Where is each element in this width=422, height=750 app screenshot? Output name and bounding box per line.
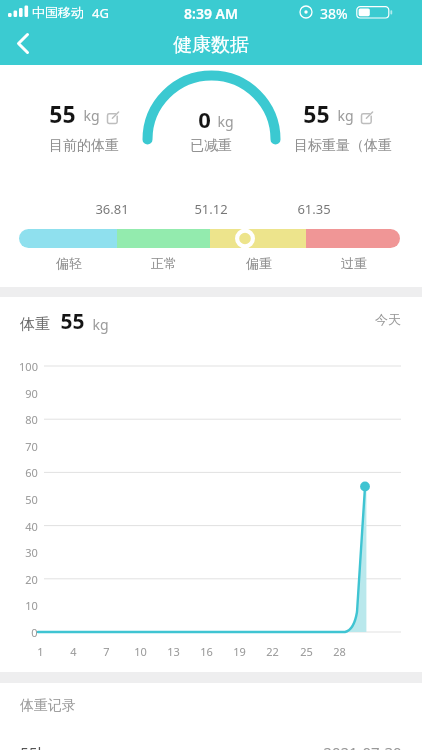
staticText: 已减重: [190, 137, 232, 155]
staticText: 13: [167, 644, 180, 659]
button[interactable]: 55: [268, 98, 408, 129]
staticText: 38%: [320, 4, 348, 23]
staticText: 80: [25, 412, 38, 427]
staticText: 55: [303, 98, 330, 129]
staticText: 50: [25, 492, 38, 507]
staticText: 8:39 AM: [184, 4, 238, 23]
staticText: 25: [300, 644, 313, 659]
staticText: 55: [49, 98, 76, 129]
staticText: 28: [333, 644, 346, 659]
staticText: 正常: [151, 255, 177, 271]
staticText: 目标重量（体重: [294, 137, 392, 155]
staticText: 40: [25, 519, 38, 534]
staticText: 61.35: [297, 200, 331, 218]
staticText: 4: [70, 644, 77, 659]
staticText: 19: [233, 644, 246, 659]
staticText: 90: [25, 386, 38, 401]
staticText: 偏重: [246, 255, 272, 271]
button[interactable]: 55: [14, 98, 154, 129]
staticText: 10: [134, 644, 147, 659]
button[interactable]: 55kg: [20, 742, 402, 750]
staticText: 目前的体重: [49, 137, 119, 155]
staticText: kg: [83, 106, 100, 125]
staticText: 55kg: [20, 742, 55, 750]
staticText: kg: [337, 106, 354, 125]
staticText: 30: [25, 545, 38, 560]
staticText: 36.81: [95, 200, 129, 218]
staticText: 10: [25, 598, 38, 613]
staticText: 51.12: [194, 200, 228, 218]
staticText: 健康数据: [173, 33, 249, 57]
staticText: 16: [200, 644, 213, 659]
staticText: 0: [31, 625, 38, 640]
staticText: 60: [25, 465, 38, 480]
staticText: 7: [103, 644, 110, 659]
staticText: 70: [25, 439, 38, 454]
button[interactable]: 今天: [375, 311, 401, 327]
staticText: 55: [60, 307, 85, 336]
staticText: 20: [25, 572, 38, 587]
staticText: 1: [37, 644, 44, 659]
staticText: 22: [266, 644, 279, 659]
staticText: 体重: [20, 315, 50, 334]
staticText: kg: [217, 112, 234, 131]
staticText: 过重: [341, 255, 367, 271]
staticText: 中国移动: [32, 4, 84, 20]
staticText: 4G: [92, 4, 109, 22]
staticText: 2021-07-30: [323, 742, 402, 750]
staticText: 体重记录: [20, 697, 76, 715]
button[interactable]: [4, 26, 44, 62]
staticText: 100: [19, 359, 38, 374]
staticText: 偏轻: [56, 255, 82, 271]
staticText: kg: [92, 315, 109, 334]
staticText: 0: [198, 104, 211, 134]
